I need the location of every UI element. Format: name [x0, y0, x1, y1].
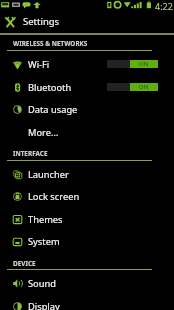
staticText: Bluetooth [28, 81, 72, 94]
staticText: System [28, 235, 60, 248]
staticText: Display [28, 300, 60, 310]
staticText: ON [139, 60, 149, 68]
button[interactable]: Toggle Bluetooth [107, 83, 158, 91]
button[interactable]: Wi-Fi [0, 53, 174, 75]
button[interactable]: Themes [0, 208, 174, 230]
button[interactable]: More… [0, 121, 174, 143]
button[interactable]: Toggle Wi-Fi [107, 60, 158, 68]
staticText: 4:22 [155, 0, 173, 11]
button[interactable]: Display [0, 295, 174, 310]
staticText: Wi-Fi [28, 58, 50, 71]
staticText: Sound [28, 277, 56, 290]
button[interactable]: Sound [0, 272, 174, 294]
button[interactable]: Lock screen [0, 185, 174, 207]
staticText: DEVICE [13, 259, 36, 268]
button[interactable]: Data usage [0, 98, 174, 120]
button[interactable]: Bluetooth [0, 76, 174, 98]
button[interactable]: System [0, 230, 174, 252]
staticText: Settings [23, 15, 60, 28]
staticText: Themes [28, 213, 63, 226]
staticText: INTERFACE [13, 149, 48, 158]
staticText: Launcher [28, 168, 69, 181]
staticText: More… [28, 126, 59, 139]
staticText: WIRELESS & NETWORKS [13, 39, 88, 48]
staticText: Data usage [28, 103, 78, 116]
staticText: ON [139, 83, 149, 91]
staticText: Lock screen [28, 190, 80, 203]
button[interactable]: Settings [0, 0, 174, 32]
button[interactable]: Launcher [0, 163, 174, 185]
